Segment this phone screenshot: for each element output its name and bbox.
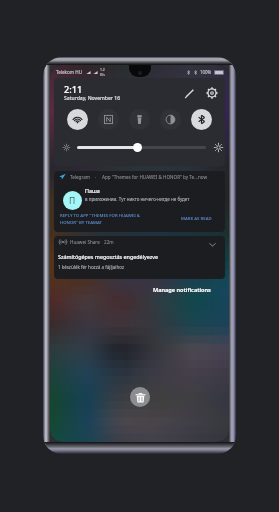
button[interactable]: Flashlight — [129, 109, 150, 130]
button[interactable]: MARK AS READ — [178, 213, 215, 223]
button[interactable]: Clear all notifications — [130, 387, 150, 407]
staticText: 1 készülék fér hozzá a fájljaihoz — [58, 264, 125, 270]
staticText: Számítógépes megosztás engedélyezve — [58, 253, 159, 260]
staticText: Telegram — [70, 174, 91, 180]
staticText: · — [95, 174, 97, 180]
button[interactable]: Eye comfort — [160, 109, 181, 130]
staticText: 1.2 — [100, 67, 105, 72]
button[interactable]: NFC — [98, 109, 119, 130]
staticText: 100% — [200, 69, 212, 75]
button[interactable]: Bluetooth — [191, 109, 212, 130]
staticText: K/s — [100, 72, 105, 77]
staticText: Паша — [85, 187, 100, 194]
staticText: Huawei Share — [70, 239, 100, 245]
button[interactable]: Manage notifications — [151, 284, 213, 296]
staticText: в приложении. Тут никто ничего-нигде не … — [85, 196, 190, 202]
staticText: П — [69, 195, 76, 207]
button[interactable]: REPLY TO APP "THEMES FOR HUAWEI & HONOR"… — [57, 210, 143, 227]
button[interactable]: Settings — [201, 82, 223, 104]
staticText: REPLY TO APP "THEMES FOR HUAWEI & HONOR"… — [60, 212, 140, 225]
staticText: MARK AS READ — [181, 215, 212, 221]
staticText: 22m — [104, 239, 114, 245]
staticText: Telekom HU — [56, 69, 83, 75]
staticText: Manage notifications — [153, 286, 211, 294]
staticText: 2:11 — [64, 83, 83, 96]
button[interactable]: Brightness — [133, 143, 142, 152]
staticText: App "Themes for HUAWEI & HONOR" by Te... — [102, 174, 198, 180]
button[interactable]: Edit quick settings — [178, 82, 200, 104]
button[interactable]: Expand notification — [204, 236, 221, 253]
button[interactable]: Wi-Fi — [67, 109, 88, 130]
staticText: now — [198, 174, 208, 180]
staticText: Saturday, November 16 — [64, 95, 121, 102]
